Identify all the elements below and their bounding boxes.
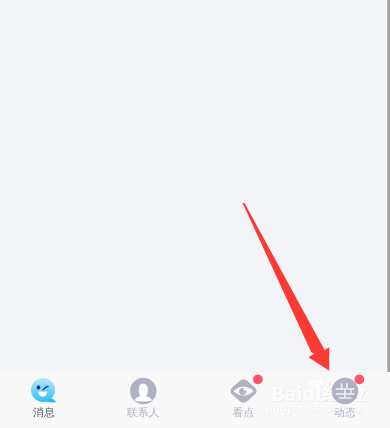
staticText: 看点 [232,406,254,419]
staticText: 经验 [324,381,366,407]
staticText: jingyan.baidu.com [267,401,364,415]
button[interactable]: 联系人 [95,372,191,428]
staticText: 经验 [323,380,365,406]
button[interactable]: 动态 [297,372,390,428]
staticText: 消息 [33,406,55,419]
button[interactable]: 看点 [195,372,291,428]
staticText: Baidu [272,381,329,407]
staticText: 联系人 [127,406,160,419]
staticText: 动态 [334,406,356,419]
button[interactable]: 消息 [0,372,92,428]
staticText: Baidu [271,380,328,406]
staticText: jingyan.baidu.com [267,401,364,416]
